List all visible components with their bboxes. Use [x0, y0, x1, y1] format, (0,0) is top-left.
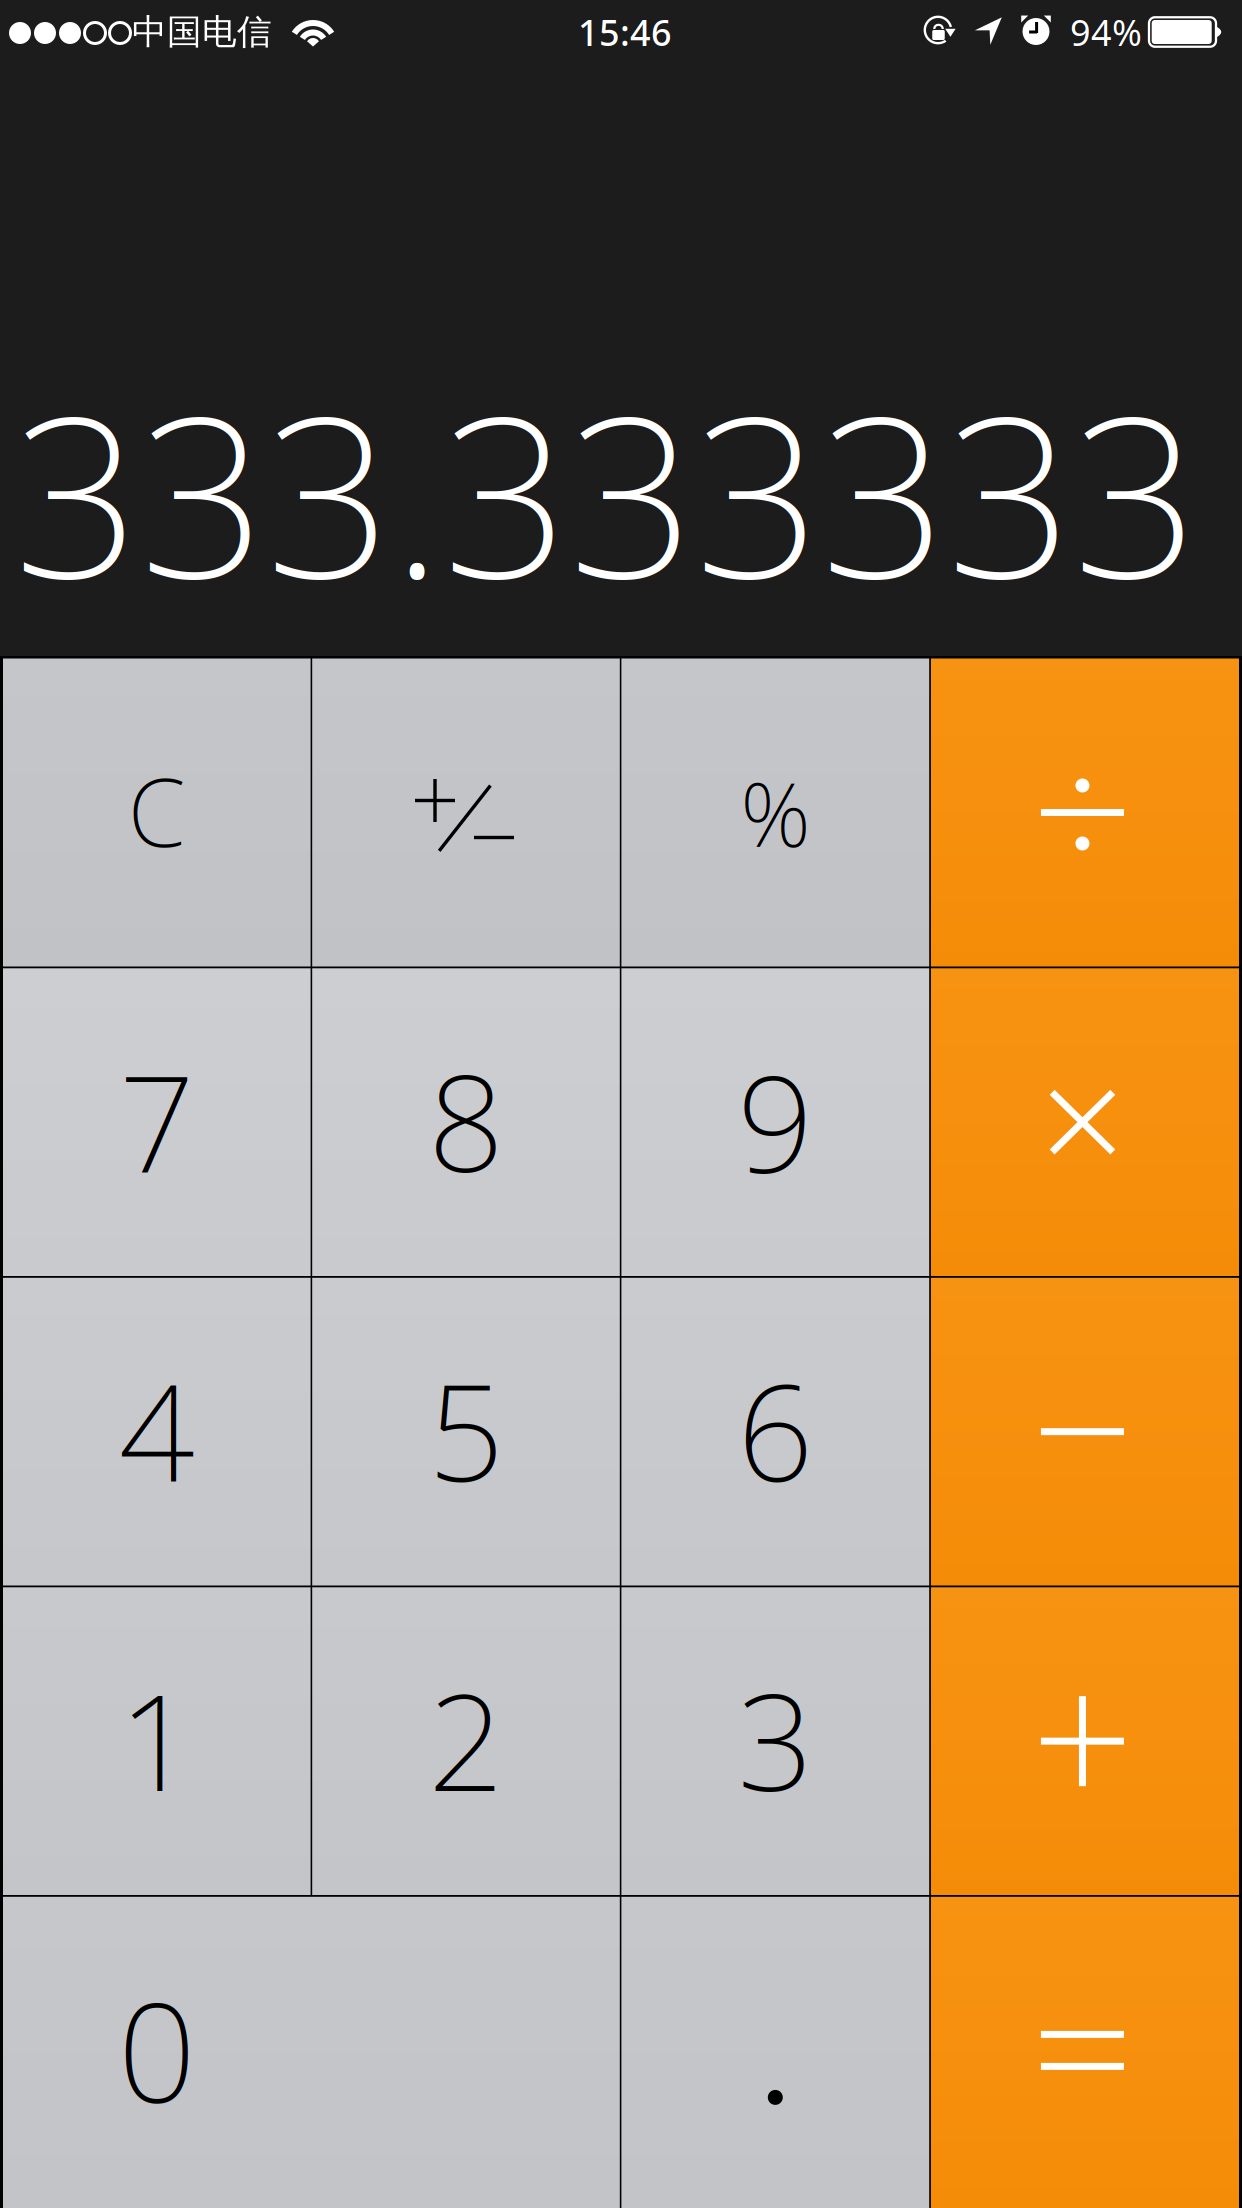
staticText: 2: [428, 1651, 504, 1828]
staticText: 1: [119, 1651, 195, 1828]
button[interactable]: 7: [3, 968, 311, 1276]
button[interactable]: Decimal point: [621, 1897, 929, 2208]
staticText: 94%: [1070, 8, 1142, 56]
button[interactable]: 8: [312, 968, 620, 1276]
staticText: 0: [118, 1958, 196, 2141]
staticText: 6: [737, 1341, 813, 1518]
staticText: 9: [737, 1032, 813, 1209]
staticText: 4: [119, 1341, 195, 1518]
button[interactable]: 0: [3, 1897, 620, 2208]
staticText: 333.333333: [13, 345, 1198, 639]
button[interactable]: Equals: [931, 1897, 1239, 2208]
button[interactable]: 1: [3, 1587, 311, 1895]
button[interactable]: 4: [3, 1278, 311, 1585]
button[interactable]: 5: [312, 1278, 620, 1585]
button[interactable]: Plus: [931, 1587, 1239, 1895]
button[interactable]: Multiply: [931, 968, 1239, 1276]
button[interactable]: 3: [621, 1587, 929, 1895]
button[interactable]: Divide: [931, 658, 1239, 966]
button[interactable]: 6: [621, 1278, 929, 1585]
staticText: 7: [119, 1032, 195, 1209]
button[interactable]: C: [3, 658, 311, 966]
staticText: 中国电信: [132, 11, 272, 53]
staticText: %: [740, 754, 810, 871]
staticText: 8: [428, 1032, 504, 1209]
button[interactable]: 9: [621, 968, 929, 1276]
staticText: 15:46: [578, 8, 672, 56]
staticText: 3: [737, 1651, 813, 1828]
button[interactable]: Percent: [621, 658, 929, 966]
staticText: C: [128, 748, 186, 872]
button[interactable]: 2: [312, 1587, 620, 1895]
button[interactable]: Plus Minus: [312, 658, 620, 966]
staticText: 5: [428, 1341, 504, 1518]
button[interactable]: Minus: [931, 1278, 1239, 1585]
